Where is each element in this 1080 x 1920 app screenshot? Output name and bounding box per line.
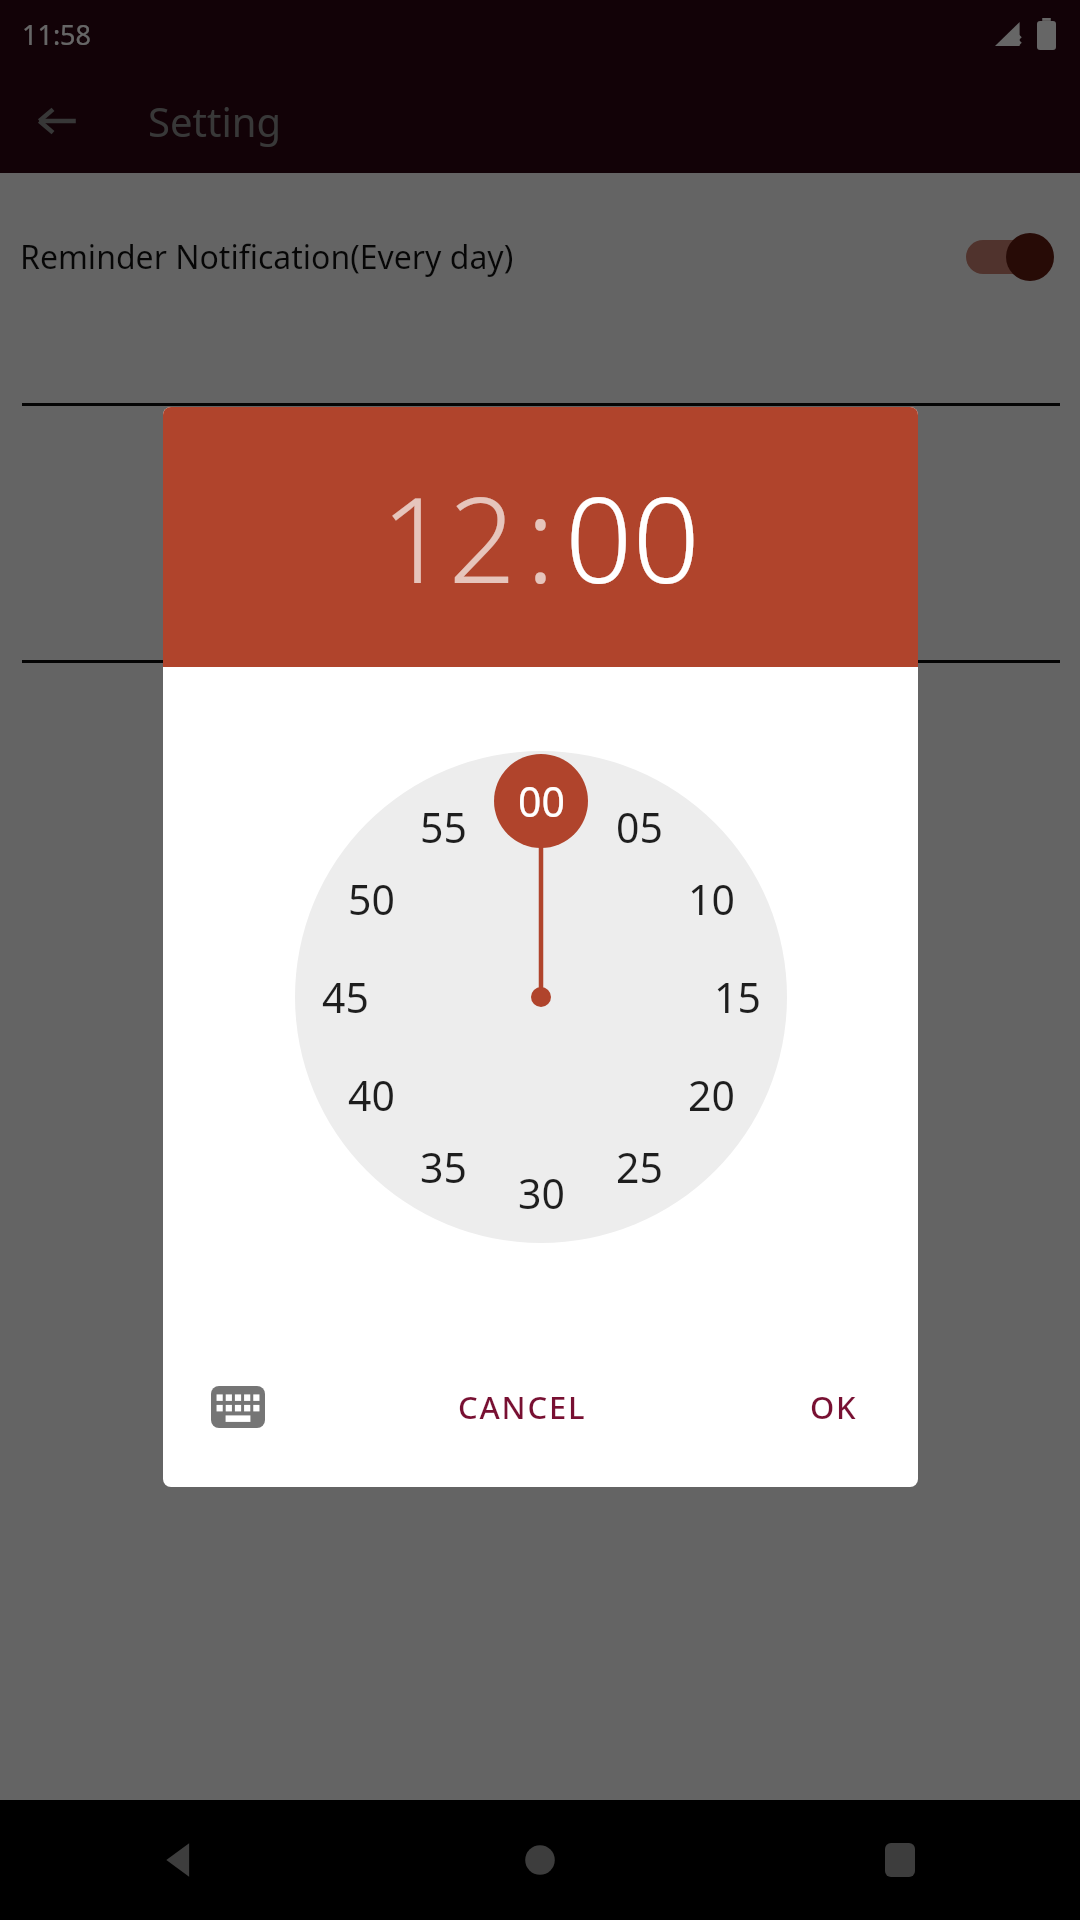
staticText: 00 (565, 457, 700, 618)
staticText: 00 (518, 773, 565, 829)
button[interactable]: Back (0, 1800, 360, 1920)
button[interactable]: Home (360, 1800, 720, 1920)
staticText: CANCEL (458, 1386, 587, 1428)
button[interactable]: 10 (676, 864, 746, 934)
button[interactable]: OK (792, 1370, 876, 1444)
staticText: 10 (688, 871, 735, 927)
button[interactable]: Switch to text input mode (199, 1368, 277, 1446)
staticText: 30 (518, 1165, 565, 1221)
staticText: 05 (616, 799, 663, 855)
staticText: 40 (348, 1067, 395, 1123)
staticText: Setting (148, 94, 282, 148)
button[interactable]: 55 (408, 792, 478, 862)
staticText: 35 (420, 1139, 467, 1195)
staticText: 50 (348, 871, 395, 927)
button[interactable]: 45 (310, 962, 380, 1032)
staticText: Reminder Notification(Every day) (20, 235, 514, 279)
staticText: 12 (381, 457, 516, 618)
button[interactable]: 35 (408, 1132, 478, 1202)
button[interactable]: 00 (561, 457, 704, 618)
button[interactable]: 15 (702, 962, 772, 1032)
button[interactable]: 12 (377, 457, 520, 618)
button[interactable]: 00 (506, 766, 576, 836)
button[interactable]: 25 (604, 1132, 674, 1202)
staticText: 11:58 (22, 16, 92, 53)
staticText: 25 (616, 1139, 663, 1195)
button[interactable]: 05 (604, 792, 674, 862)
button[interactable]: 20 (676, 1060, 746, 1130)
button[interactable]: Navigate up (22, 86, 92, 156)
staticText: : (526, 457, 555, 618)
staticText: 20 (688, 1067, 735, 1123)
button[interactable]: Recent apps (720, 1800, 1080, 1920)
staticText: 55 (420, 799, 467, 855)
button[interactable]: 30 (506, 1158, 576, 1228)
button[interactable]: CANCEL (440, 1370, 605, 1444)
button[interactable]: 40 (336, 1060, 406, 1130)
button[interactable]: 50 (336, 864, 406, 934)
button[interactable] (962, 229, 1054, 285)
staticText: 15 (714, 969, 761, 1025)
staticText: OK (810, 1386, 858, 1428)
staticText: 45 (322, 969, 369, 1025)
